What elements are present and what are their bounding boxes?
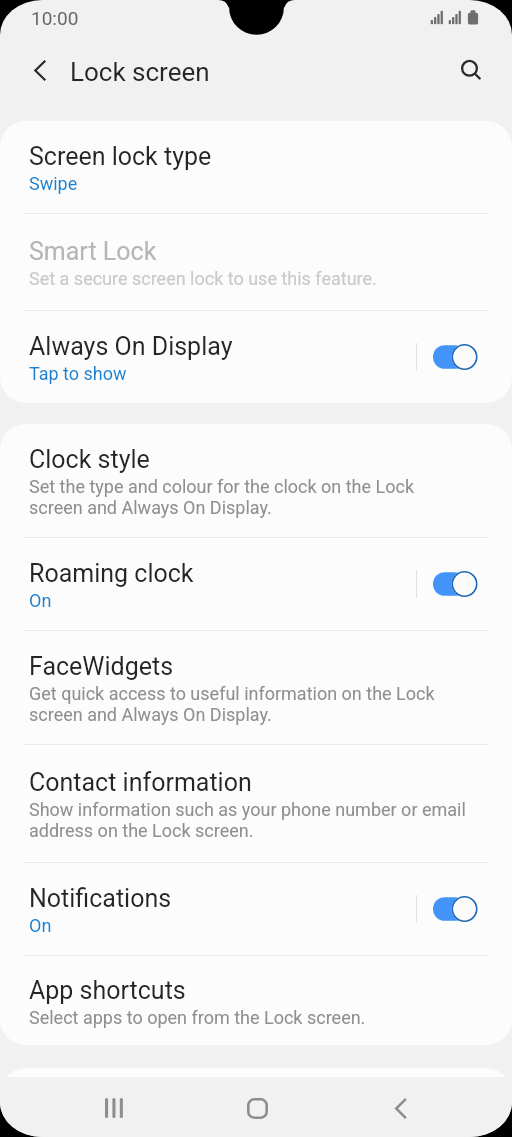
staticText: Clock style [29, 445, 150, 474]
button[interactable]: App shortcuts [0, 956, 512, 1045]
button[interactable]: Contact information [0, 745, 512, 862]
button[interactable]: Smart Lock [0, 214, 512, 310]
staticText: On [29, 915, 52, 936]
staticText: Contact information [29, 768, 252, 797]
staticText: Roaming clock [29, 559, 194, 588]
button[interactable]: Back [18, 49, 60, 91]
staticText: Select apps to open from the Lock screen… [29, 1007, 366, 1028]
button[interactable]: Always On Display [0, 311, 512, 403]
button[interactable]: Toggle [433, 571, 478, 597]
staticText: 10:00 [31, 7, 79, 29]
button[interactable]: FaceWidgets [0, 631, 512, 744]
staticText: On [29, 590, 52, 611]
button[interactable]: Notifications [0, 863, 512, 955]
staticText: Set a secure screen lock to use this fea… [29, 268, 377, 289]
button[interactable]: Toggle [433, 344, 478, 370]
button[interactable]: Screen lock type [0, 121, 512, 213]
staticText: Tap to show [29, 363, 127, 384]
button[interactable]: Search [447, 47, 492, 92]
staticText: Smart Lock [29, 237, 157, 266]
button[interactable]: Home [233, 1084, 281, 1132]
staticText: Set the type and colour for the clock on… [29, 476, 415, 518]
button[interactable]: Clock style [0, 424, 512, 537]
staticText: Screen lock type [29, 142, 212, 171]
staticText: Get quick access to useful information o… [29, 683, 435, 725]
staticText: Swipe [29, 173, 78, 194]
staticText: FaceWidgets [29, 652, 174, 681]
button[interactable]: Back [376, 1084, 424, 1132]
staticText: Notifications [29, 884, 172, 913]
staticText: Show information such as your phone numb… [29, 799, 466, 841]
button[interactable]: Toggle [433, 896, 478, 922]
button[interactable]: Recents [90, 1084, 138, 1132]
staticText: Lock screen [70, 57, 210, 87]
button[interactable]: Roaming clock [0, 538, 512, 630]
staticText: Always On Display [29, 332, 233, 361]
staticText: App shortcuts [29, 976, 186, 1005]
